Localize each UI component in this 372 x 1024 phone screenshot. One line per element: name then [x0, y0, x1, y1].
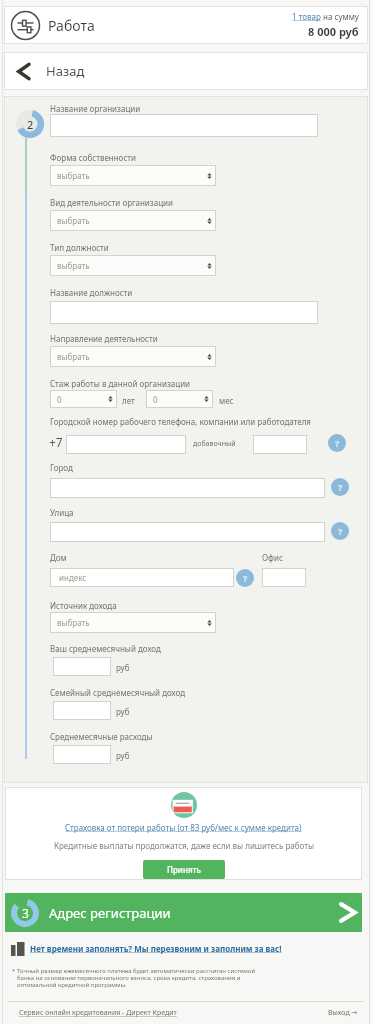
staticText: выбрать	[57, 170, 90, 181]
button[interactable]: выбрать	[50, 255, 216, 276]
button[interactable]: 3	[5, 893, 362, 932]
staticText: выбрать	[57, 351, 90, 362]
staticText: индекс	[57, 572, 87, 583]
staticText: выбрать	[57, 215, 90, 226]
staticText: Среднемесячные расходы	[50, 731, 153, 742]
staticText: Назад	[46, 62, 85, 80]
staticText: Источник дохода	[50, 600, 117, 611]
staticText: Выход →	[328, 1008, 358, 1018]
staticText: ?	[338, 525, 343, 537]
staticText: 0	[153, 394, 158, 405]
staticText: ?	[338, 481, 343, 493]
staticText: лет	[122, 395, 135, 406]
button[interactable]: Справка	[331, 522, 349, 540]
staticText: Тип должности	[50, 242, 109, 253]
button[interactable]: выбрать	[50, 210, 216, 231]
button[interactable]	[66, 435, 186, 454]
button[interactable]: 0	[146, 390, 213, 408]
staticText: Офис	[262, 552, 283, 563]
button[interactable]	[50, 522, 325, 542]
staticText: Городской номер рабочего телефона, компа…	[50, 416, 311, 427]
staticText: Работа	[48, 16, 95, 35]
button[interactable]: Справка	[328, 434, 346, 452]
button[interactable]: Справка	[331, 478, 349, 496]
staticText: Нет времени заполнять? Мы перезвоним и з…	[30, 943, 282, 954]
staticText: выбрать	[57, 617, 90, 628]
staticText: Город	[50, 462, 73, 473]
staticText: выбрать	[57, 260, 90, 271]
button[interactable]: Справка	[236, 569, 254, 587]
staticText: мес	[219, 395, 234, 406]
button[interactable]	[50, 301, 318, 324]
staticText: на сумму	[321, 11, 359, 22]
staticText: 0	[57, 394, 62, 405]
staticText: 1 товар	[292, 11, 321, 22]
button[interactable]	[262, 568, 306, 587]
staticText: *	[12, 967, 16, 975]
other: Далее	[338, 903, 357, 922]
button[interactable]: Назад	[4, 52, 368, 90]
button[interactable]	[53, 745, 111, 764]
staticText: Точный размер ежемесячного платежа будет…	[17, 967, 256, 989]
staticText: руб	[116, 662, 130, 673]
other: Назад	[15, 63, 32, 80]
staticText: +7	[49, 434, 63, 450]
staticText: Страховка от потери работы (от 83 руб/ме…	[65, 822, 302, 833]
staticText: 2	[27, 117, 34, 132]
staticText: Название должности	[50, 287, 133, 298]
staticText: Кредитные выплаты продолжатся, даже если…	[54, 840, 314, 851]
button[interactable]	[50, 478, 325, 498]
staticText: Стаж работы в данной организации	[50, 378, 191, 389]
button[interactable]	[50, 114, 318, 137]
button[interactable]	[253, 435, 307, 454]
staticText: Вид деятельности организации	[50, 197, 174, 208]
staticText: Семейный среднемесячный доход	[50, 687, 186, 698]
staticText: Дом	[50, 552, 67, 563]
staticText: руб	[116, 706, 130, 717]
staticText: Улица	[50, 507, 74, 518]
staticText: ?	[243, 572, 248, 584]
staticText: Название организации	[50, 103, 141, 114]
button[interactable]: выбрать	[50, 346, 216, 367]
button[interactable]: выбрать	[50, 165, 216, 186]
staticText: 3	[22, 905, 29, 921]
staticText: Принять	[167, 864, 201, 875]
button[interactable]: индекс	[50, 568, 234, 587]
staticText: Адрес регистрации	[49, 904, 171, 922]
button[interactable]: 0	[50, 390, 117, 408]
staticText: 8 000 руб	[308, 24, 359, 39]
button[interactable]	[53, 657, 111, 676]
staticText: Форма собственности	[50, 152, 137, 163]
staticText: Ваш среднемесячный доход	[50, 643, 161, 654]
staticText: добавочный	[193, 439, 236, 449]
staticText: Сервис онлайн кредитования - Директ Кред…	[19, 1008, 177, 1018]
button[interactable]: Принять	[143, 860, 225, 879]
button[interactable]	[53, 701, 111, 720]
staticText: ?	[335, 437, 340, 449]
staticText: руб	[116, 750, 130, 761]
button[interactable]: выбрать	[50, 612, 216, 633]
staticText: Направление деятельности	[50, 333, 158, 344]
